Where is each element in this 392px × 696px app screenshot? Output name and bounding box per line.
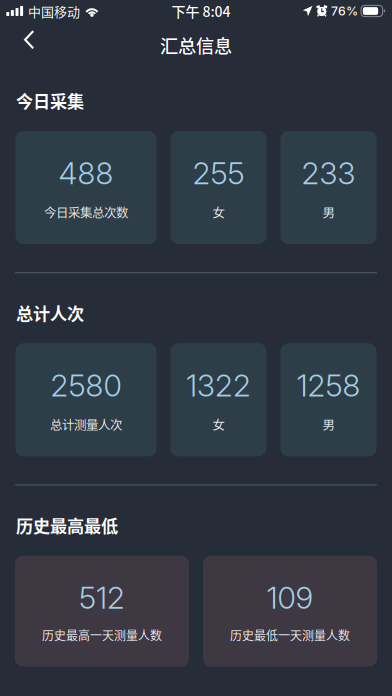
- staticText: 男: [322, 415, 334, 433]
- staticText: 历史最高最低: [16, 513, 118, 537]
- staticText: 女: [212, 415, 224, 433]
- staticText: 2580: [50, 367, 121, 404]
- button[interactable]: 1322: [170, 343, 266, 456]
- button[interactable]: 512: [15, 556, 189, 667]
- staticText: 512: [79, 580, 125, 616]
- staticText: 女: [212, 203, 224, 221]
- button[interactable]: 488: [15, 131, 156, 244]
- staticText: 76%: [331, 4, 358, 18]
- button[interactable]: 1258: [280, 343, 376, 456]
- staticText: 今日采集: [16, 88, 84, 113]
- button[interactable]: 255: [170, 131, 266, 244]
- staticText: 109: [266, 580, 313, 616]
- staticText: 男: [322, 203, 334, 221]
- staticText: 总计人次: [16, 300, 84, 325]
- staticText: 今日采集总次数: [44, 203, 128, 221]
- staticText: 中国移动: [28, 2, 80, 20]
- staticText: 488: [58, 155, 113, 191]
- button[interactable]: 返回: [0, 22, 66, 66]
- staticText: 总计测量人次: [50, 415, 122, 433]
- staticText: 255: [192, 155, 244, 191]
- button[interactable]: 109: [203, 556, 377, 667]
- staticText: 汇总信息: [160, 32, 232, 58]
- staticText: 233: [301, 155, 355, 191]
- button[interactable]: 2580: [15, 343, 156, 456]
- staticText: 历史最低一天测量人数: [230, 626, 350, 644]
- staticText: 1258: [296, 367, 360, 404]
- staticText: 1322: [186, 367, 251, 404]
- staticText: 历史最高一天测量人数: [42, 626, 162, 644]
- staticText: 下午 8:04: [171, 1, 230, 21]
- button[interactable]: 233: [280, 131, 376, 244]
